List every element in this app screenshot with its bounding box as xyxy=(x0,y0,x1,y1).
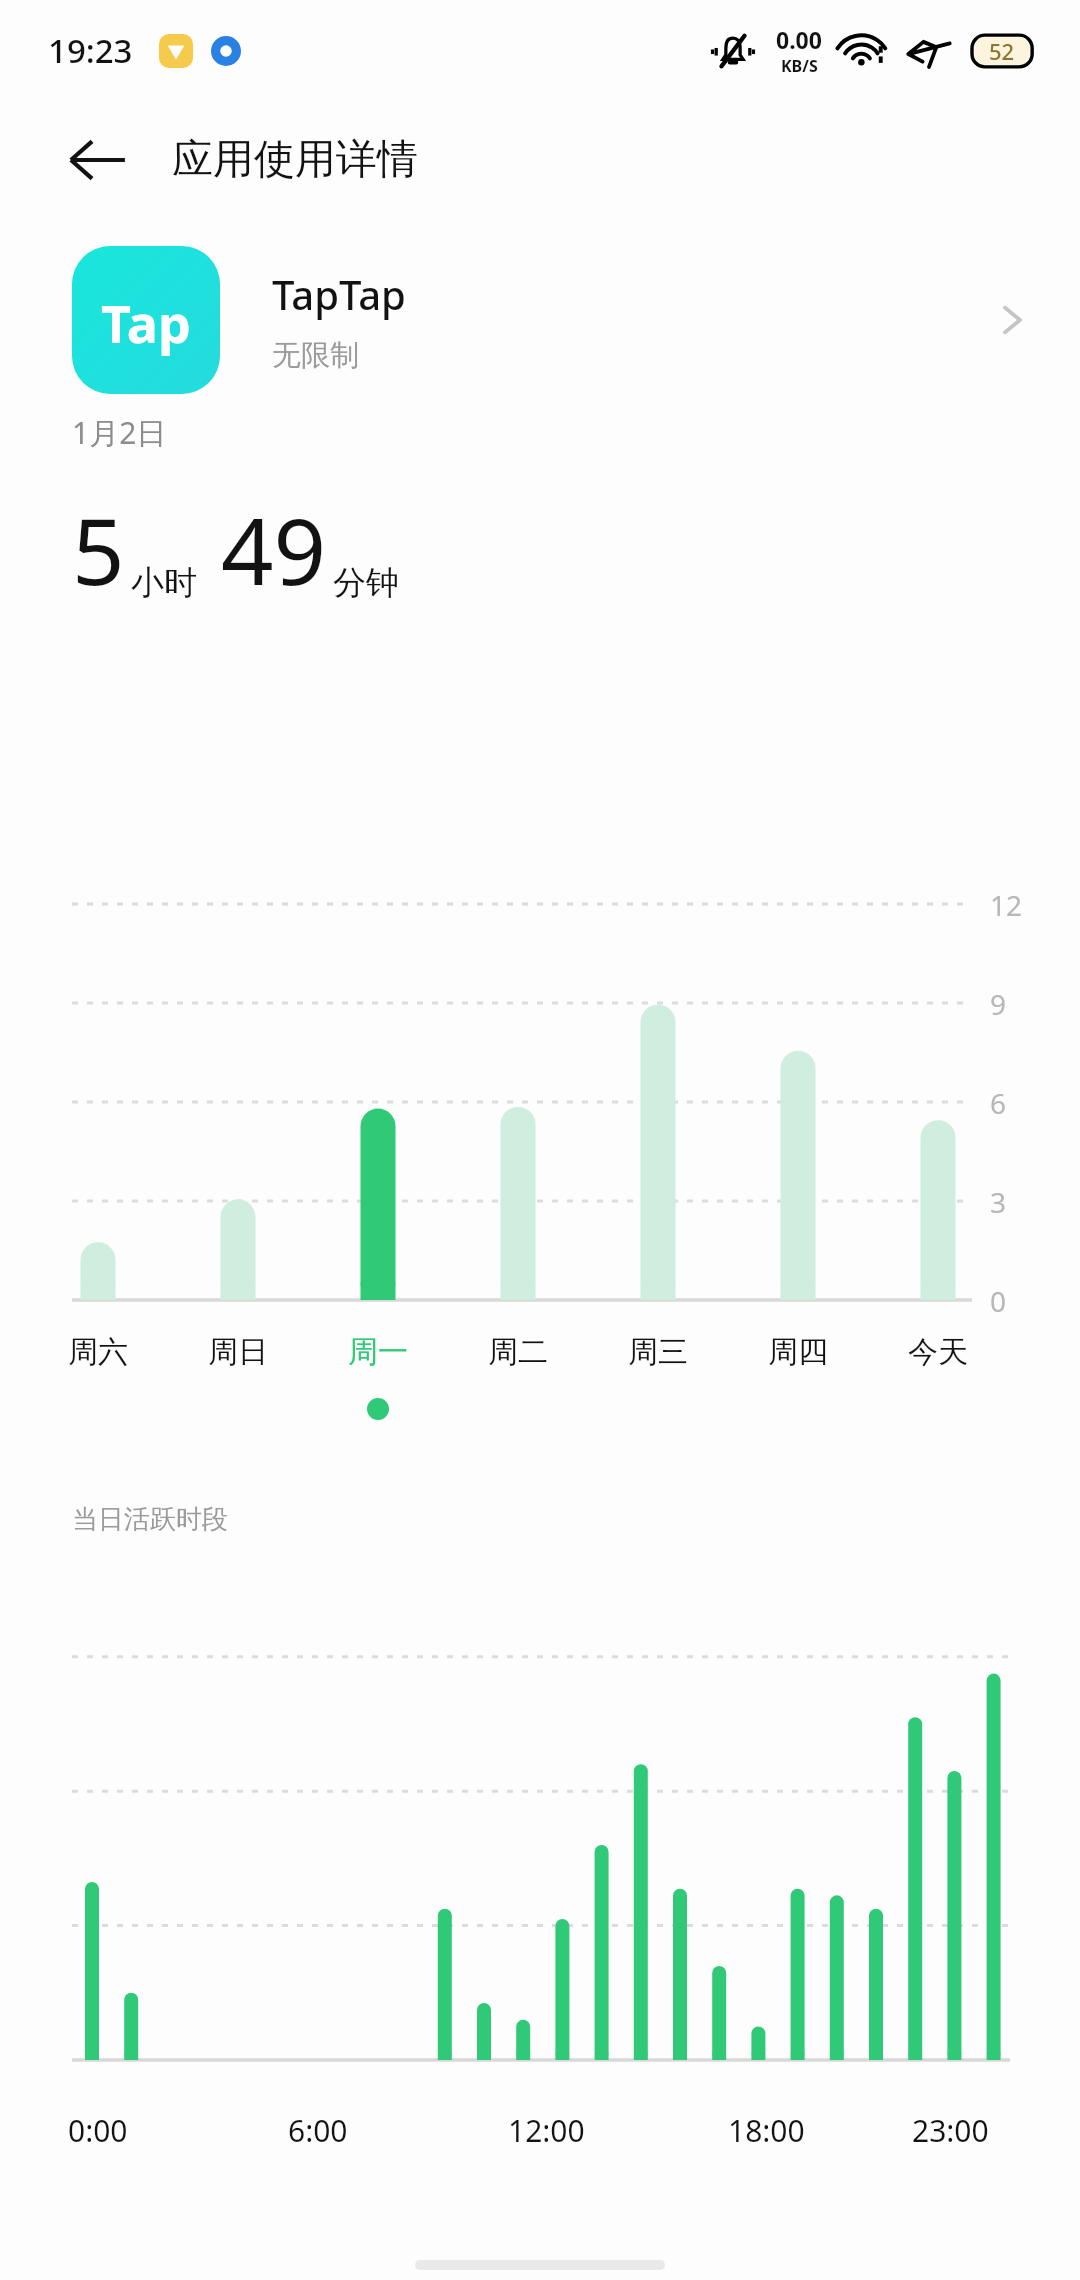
staticText: 0 xyxy=(990,1282,1007,1320)
staticText: 6 xyxy=(990,1084,1007,1122)
button[interactable]: Tap xyxy=(0,232,1080,408)
staticText: 6:00 xyxy=(288,2110,348,2151)
staticText: 周三 xyxy=(628,1333,688,1371)
staticText: 19:23 xyxy=(48,28,133,73)
staticText: 52 xyxy=(989,36,1015,66)
staticText: 今天 xyxy=(908,1333,968,1371)
button[interactable]: 周四 xyxy=(746,1328,850,1376)
staticText: 应用使用详情 xyxy=(172,134,418,186)
button[interactable]: 周二 xyxy=(466,1328,570,1376)
button[interactable]: 今天 xyxy=(886,1328,990,1376)
staticText: 18:00 xyxy=(728,2110,805,2151)
staticText: 周一 xyxy=(348,1333,408,1371)
button[interactable]: 周日 xyxy=(186,1328,290,1376)
staticText: 小时 xyxy=(131,562,197,604)
staticText: 1月2日 xyxy=(72,412,167,453)
staticText: 12:00 xyxy=(508,2110,585,2151)
staticText: 0.00 xyxy=(776,24,822,55)
staticText: 周日 xyxy=(208,1333,268,1371)
staticText: 49 xyxy=(221,487,327,612)
staticText: 周四 xyxy=(768,1333,828,1371)
button[interactable]: 周六 xyxy=(46,1328,150,1376)
staticText: 周二 xyxy=(488,1333,548,1371)
staticText: KB/S xyxy=(781,55,818,77)
button[interactable]: 周一 xyxy=(326,1328,430,1376)
staticText: 5 xyxy=(72,487,125,612)
staticText: 周六 xyxy=(68,1333,128,1371)
staticText: 分钟 xyxy=(333,562,399,604)
staticText: 23:00 xyxy=(912,2110,989,2151)
staticText: 当日活跃时段 xyxy=(72,1503,228,1536)
staticText: Tap xyxy=(101,287,191,358)
staticText: 3 xyxy=(990,1183,1007,1221)
staticText: 0:00 xyxy=(68,2110,128,2151)
staticText: 9 xyxy=(990,985,1007,1023)
button[interactable]: 周三 xyxy=(606,1328,710,1376)
staticText: 无限制 xyxy=(272,337,359,374)
staticText: TapTap xyxy=(272,267,406,321)
button[interactable]: 返回 xyxy=(42,105,152,215)
staticText: 12 xyxy=(990,886,1023,924)
